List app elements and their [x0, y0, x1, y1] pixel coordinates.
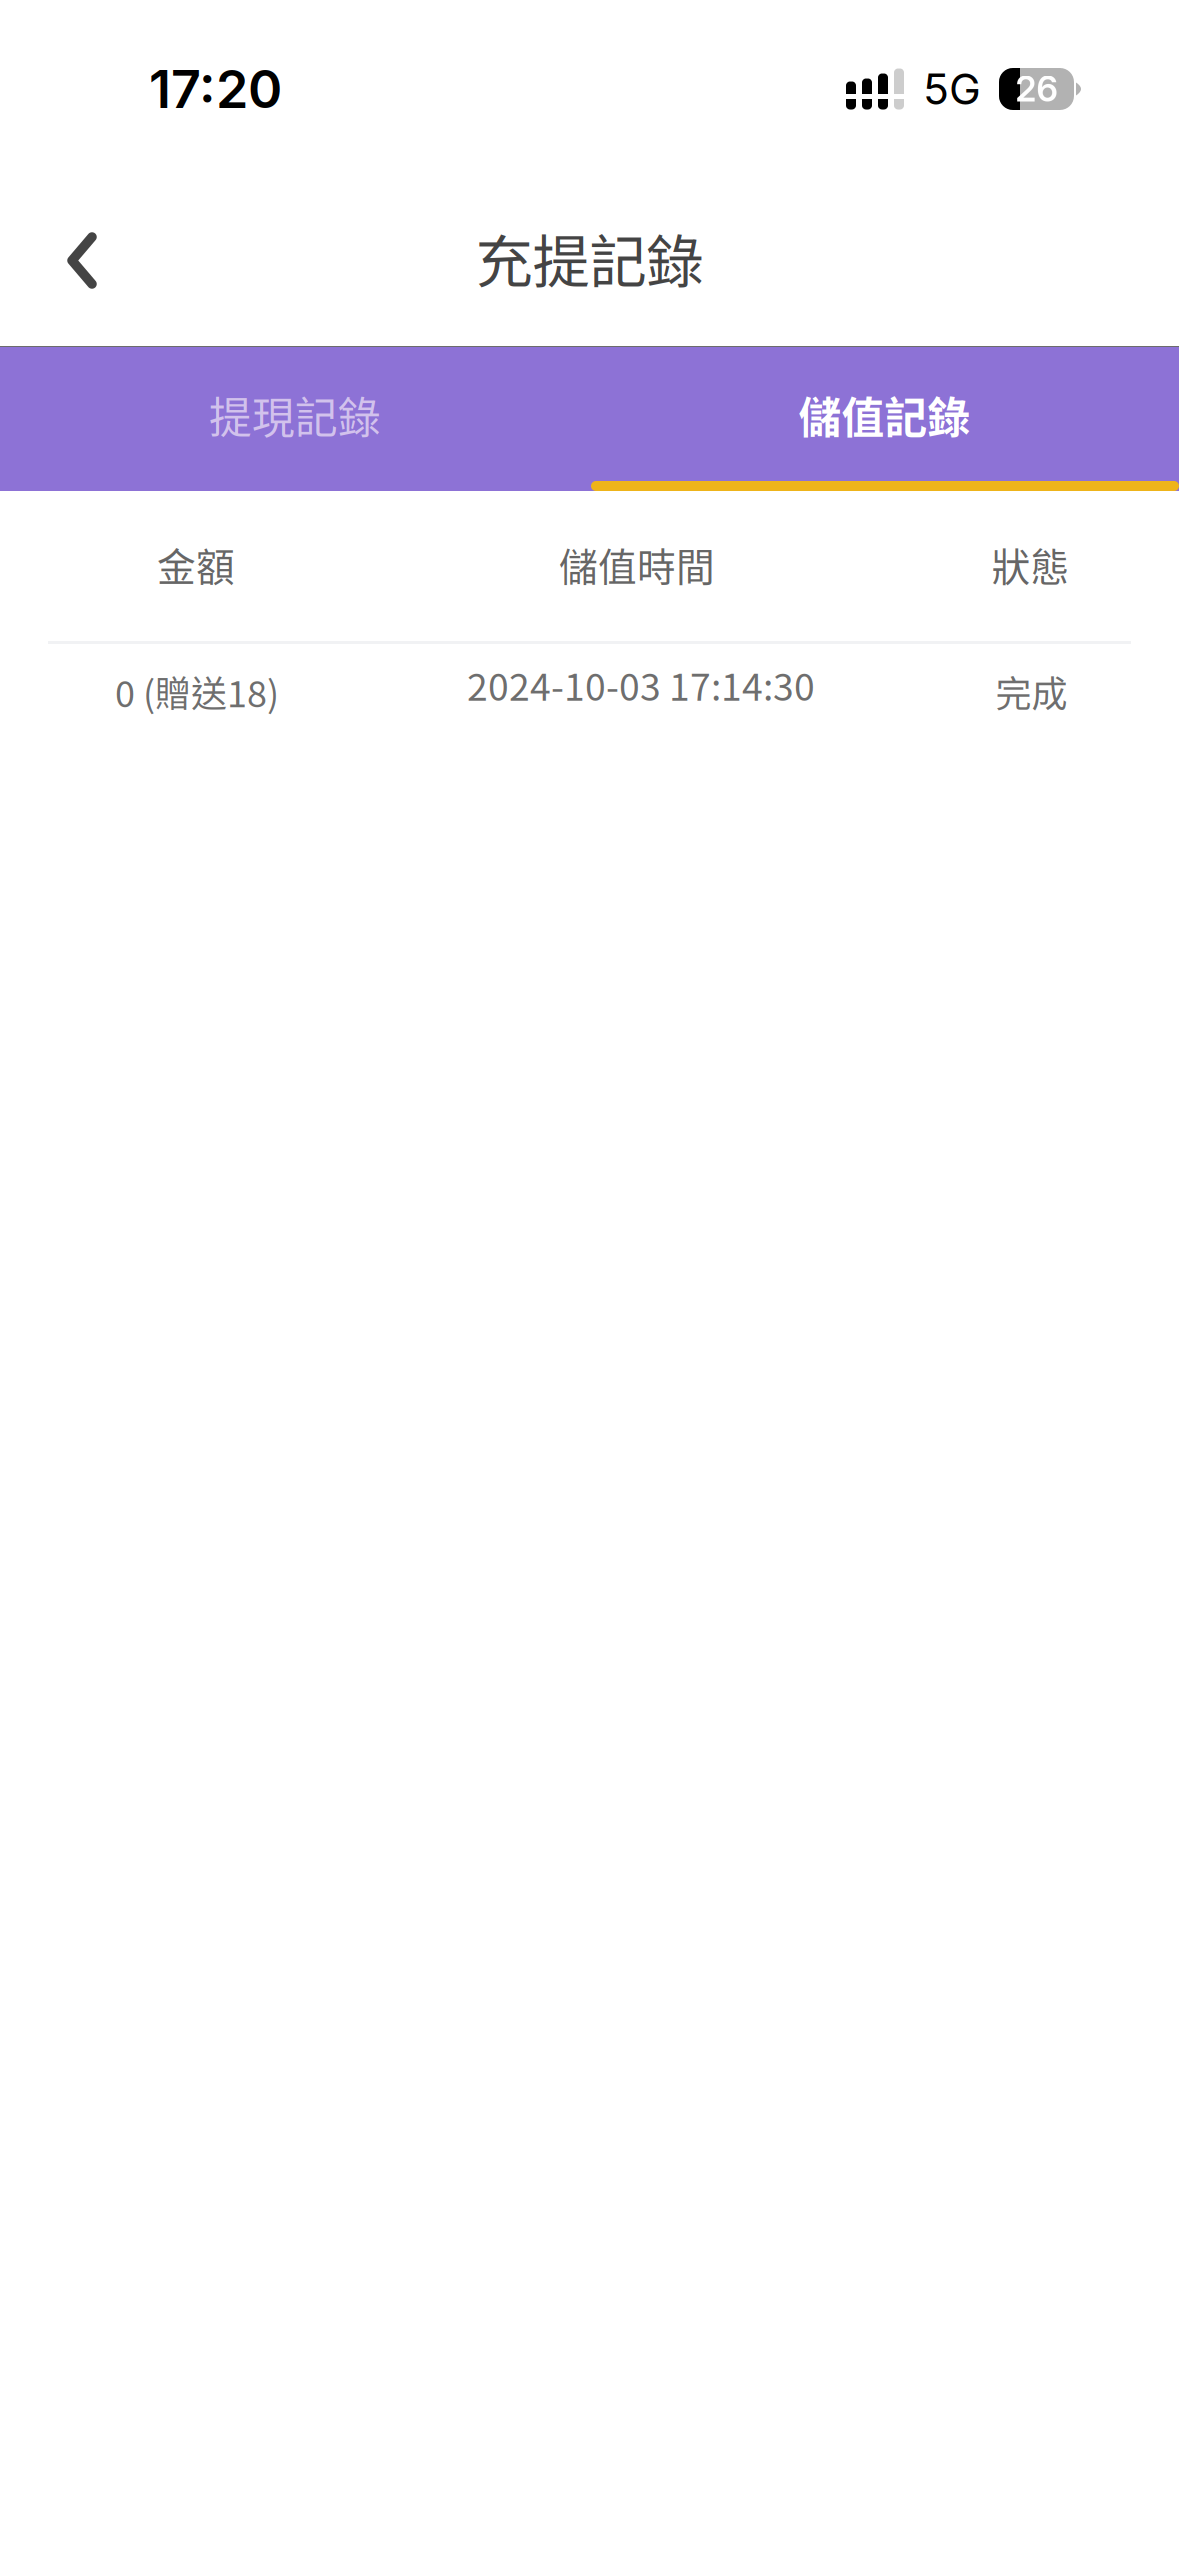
staticText: 金額: [157, 536, 235, 592]
button[interactable]: 提現記錄: [0, 347, 590, 491]
staticText: 狀態: [991, 536, 1069, 592]
staticText: 儲值時間: [559, 536, 715, 592]
staticText: 26: [1015, 68, 1057, 110]
staticText: 完成: [995, 665, 1067, 717]
staticText: 5G: [923, 63, 981, 115]
button[interactable]: 儲值記錄: [590, 347, 1179, 491]
staticText: 充提記錄: [475, 216, 703, 299]
staticText: 儲值記錄: [798, 384, 970, 446]
button[interactable]: Back: [0, 169, 116, 346]
staticText: 0 (贈送18): [115, 665, 279, 717]
staticText: 2024-10-03 17:14:30: [467, 657, 815, 712]
staticText: 17:20: [149, 57, 282, 120]
staticText: 提現記錄: [209, 384, 381, 446]
